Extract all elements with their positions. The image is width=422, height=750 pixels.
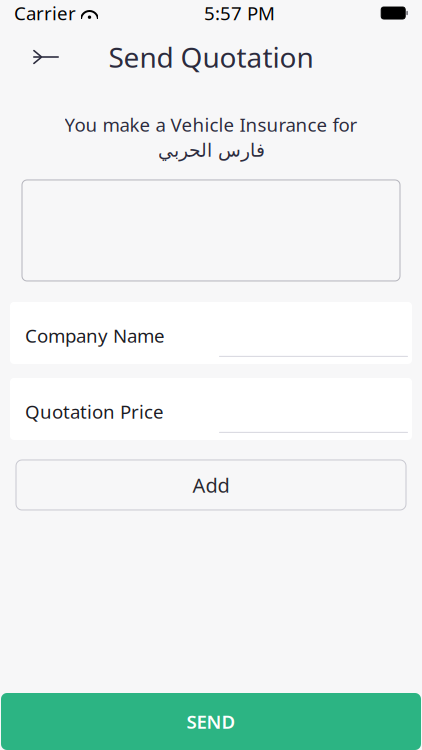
staticText: SEND xyxy=(186,709,235,734)
button[interactable]: Back xyxy=(24,35,68,79)
staticText: 5:57 PM xyxy=(204,1,275,25)
staticText: فارس الحربي xyxy=(157,140,264,161)
button[interactable]: Quotation Price xyxy=(10,378,412,440)
button[interactable]: SEND xyxy=(1,693,421,750)
staticText: You make a Vehicle Insurance for xyxy=(64,112,357,137)
staticText: Send Quotation xyxy=(108,38,313,76)
staticText: Quotation Price xyxy=(25,399,164,424)
staticText: Carrier xyxy=(14,1,76,25)
button[interactable]: Company Name xyxy=(10,302,412,364)
button[interactable]: Add xyxy=(16,460,406,510)
staticText: Company Name xyxy=(25,323,165,348)
staticText: Add xyxy=(192,472,229,498)
